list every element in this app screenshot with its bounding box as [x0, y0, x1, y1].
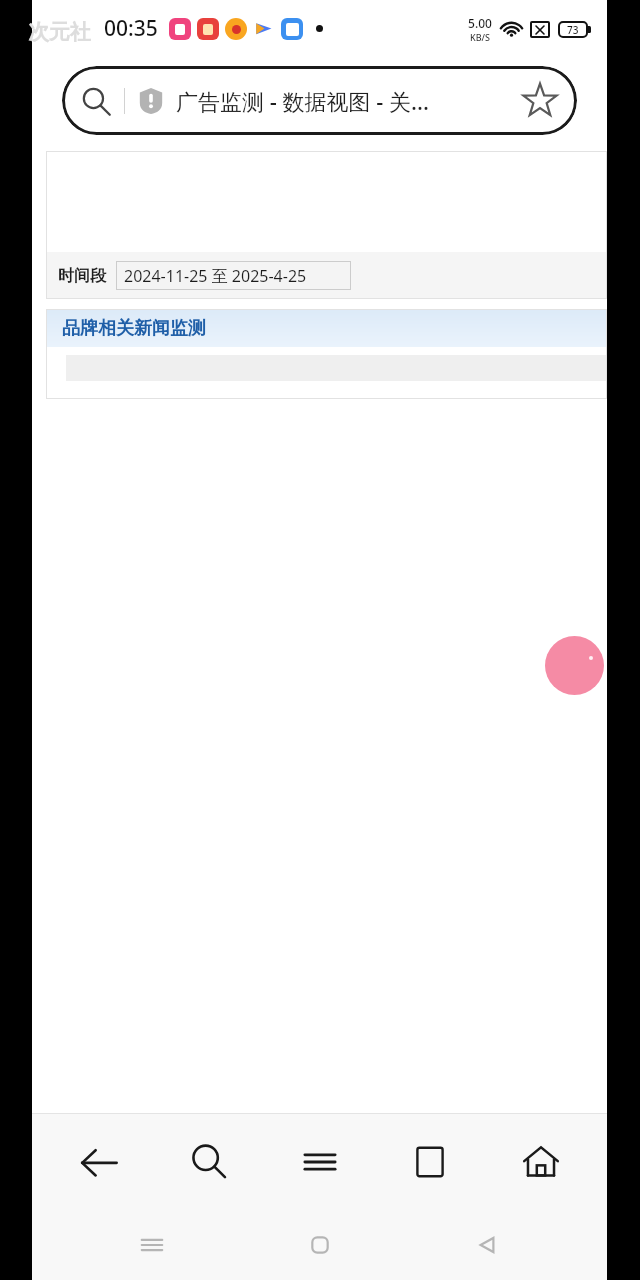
staticText: 次元社 — [28, 19, 91, 45]
staticText: 2024-11-25 至 2025-4-25 — [124, 265, 307, 287]
staticText: 00:35 — [104, 14, 158, 43]
button[interactable]: Bookmark — [521, 82, 559, 120]
button[interactable]: Back — [439, 1210, 535, 1280]
button[interactable]: Menu — [276, 1114, 364, 1210]
staticText: KB/S — [470, 31, 490, 43]
staticText: 73 — [567, 23, 579, 37]
button[interactable]: Search — [165, 1114, 253, 1210]
button[interactable]: 2024-11-25 至 2025-4-25 — [116, 261, 351, 290]
staticText: 5.00 — [468, 15, 492, 31]
button[interactable]: Home — [497, 1114, 585, 1210]
button[interactable]: Recents — [104, 1210, 200, 1280]
button[interactable]: Back — [55, 1114, 143, 1210]
button[interactable]: Home — [272, 1210, 368, 1280]
staticText: 广告监测 - 数据视图 - 关... — [176, 86, 513, 116]
button[interactable]: Floating assistant button — [545, 636, 604, 695]
other: Search — [80, 85, 112, 117]
staticText: 时间段 — [58, 266, 106, 286]
button[interactable]: Search — [62, 66, 577, 135]
staticText: 品牌相关新闻监测 — [62, 317, 206, 340]
button[interactable]: Tabs: 12 — [386, 1114, 474, 1210]
